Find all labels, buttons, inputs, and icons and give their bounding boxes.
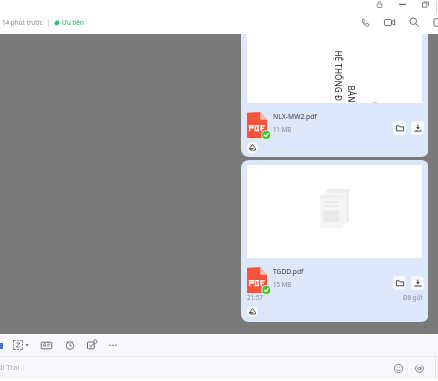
staticText: 15 MB [273,280,292,288]
button[interactable]: Search [405,13,423,31]
button[interactable]: Mention [411,360,427,376]
button[interactable]: Save to folder [393,121,406,135]
staticText: BẢN [345,85,356,103]
staticText: E [370,102,380,103]
button[interactable]: Like [247,306,258,317]
button[interactable]: Download [411,121,424,135]
button[interactable]: More options [105,337,121,353]
button[interactable]: Download [411,276,424,290]
staticText: Ưu tiên [62,18,84,27]
staticText: TGDD.pdf [273,267,304,276]
button[interactable]: Video call [380,13,398,31]
staticText: 21:57 [247,293,263,301]
button[interactable]: Task [84,337,100,353]
button[interactable]: Like [247,142,258,153]
button[interactable]: Call [356,13,374,31]
button[interactable]: Minimise [398,0,407,9]
button[interactable]: TGDD.pdf [241,160,429,322]
button[interactable]: Ưu tiên [53,18,85,27]
button[interactable]: Save to folder [393,276,406,290]
button[interactable]: Restore [421,0,430,9]
staticText: 14 phút trước [2,18,43,27]
button[interactable]: More [429,13,438,31]
staticText: dí Trai [0,362,20,372]
button[interactable]: HỆ THỐNG Đ [241,34,429,157]
button[interactable]: Lock [375,0,384,9]
staticText: NLX-MW2.pdf [273,112,317,121]
button[interactable]: Reminder [62,337,78,353]
staticText: 11 MB [273,125,292,133]
button[interactable]: Sticker [12,337,30,353]
button[interactable]: Business card [38,337,54,353]
button[interactable]: Emoji [390,360,406,376]
staticText: HỆ THỐNG Đ [332,50,343,101]
staticText: Đã gửi [403,293,423,301]
